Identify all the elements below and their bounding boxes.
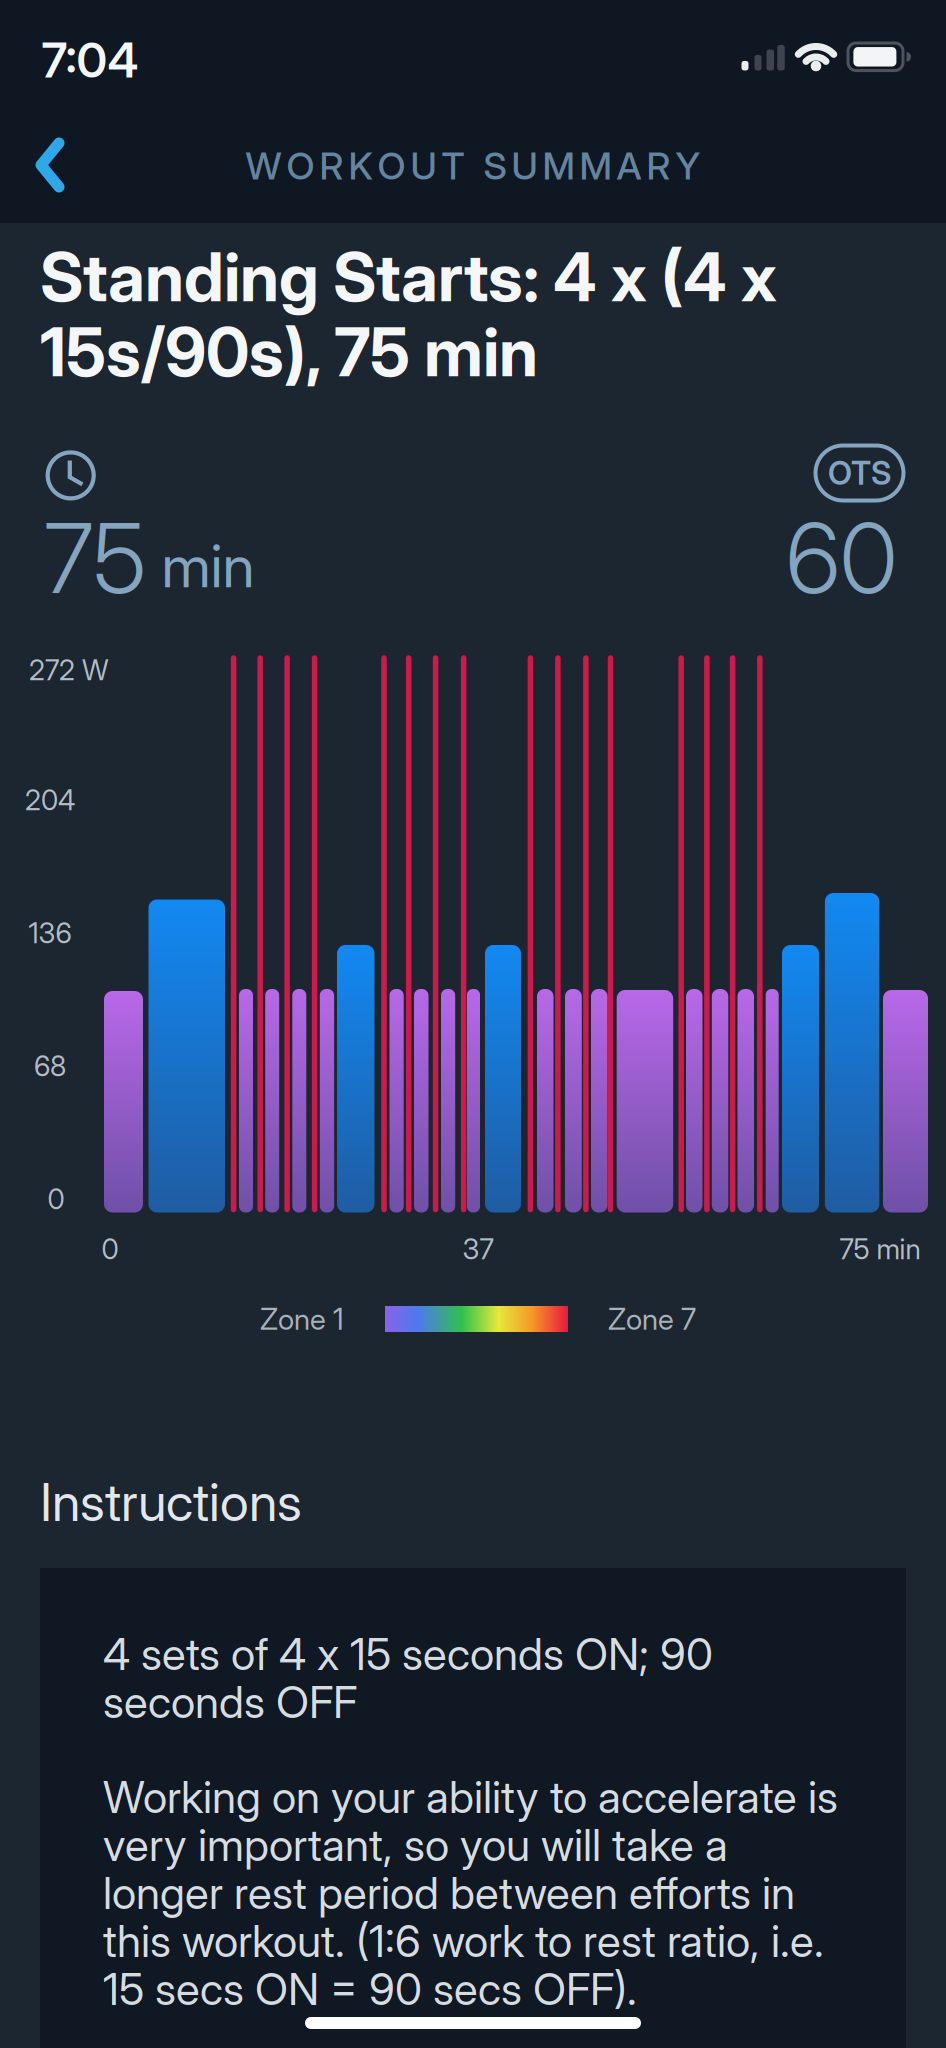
staticText: Zone 7 bbox=[608, 1302, 696, 1336]
staticText: 136 bbox=[28, 916, 71, 949]
button[interactable]: Back bbox=[0, 128, 100, 202]
staticText: Instructions bbox=[40, 1471, 302, 1533]
staticText: W O R K O U T S U M M A R Y bbox=[245, 144, 700, 188]
staticText: 15 secs ON = 90 secs OFF). bbox=[103, 1963, 637, 2015]
staticText: 0 bbox=[101, 1232, 118, 1265]
staticText: 68 bbox=[34, 1049, 66, 1082]
staticText: 75 min bbox=[839, 1232, 920, 1265]
staticText: 4 sets of 4 ​x​ 15 seconds ON; 90 bbox=[103, 1628, 713, 1680]
staticText: this workout. (1:6 work to rest ratio, i… bbox=[103, 1915, 824, 1967]
staticText: 272 W bbox=[29, 653, 109, 686]
staticText: Working on your ability to accelerate is bbox=[103, 1771, 838, 1823]
staticText: seconds OFF bbox=[103, 1676, 357, 1728]
staticText: 15s/90s), 75 min bbox=[40, 313, 538, 391]
staticText: 0 bbox=[47, 1182, 64, 1215]
staticText: longer rest period between efforts in bbox=[103, 1867, 795, 1919]
staticText: Zone 1 bbox=[260, 1302, 344, 1336]
staticText: 37 bbox=[462, 1232, 493, 1265]
staticText: 60 bbox=[786, 501, 897, 615]
staticText: min bbox=[161, 531, 254, 601]
staticText: Standing Starts: 4 x (4 x bbox=[40, 238, 777, 316]
staticText: OTS bbox=[828, 454, 891, 492]
staticText: very important, so you will take a bbox=[103, 1819, 728, 1871]
staticText: 75 bbox=[44, 501, 146, 615]
staticText: 204 bbox=[25, 783, 75, 816]
staticText: 7:04 bbox=[41, 32, 138, 88]
